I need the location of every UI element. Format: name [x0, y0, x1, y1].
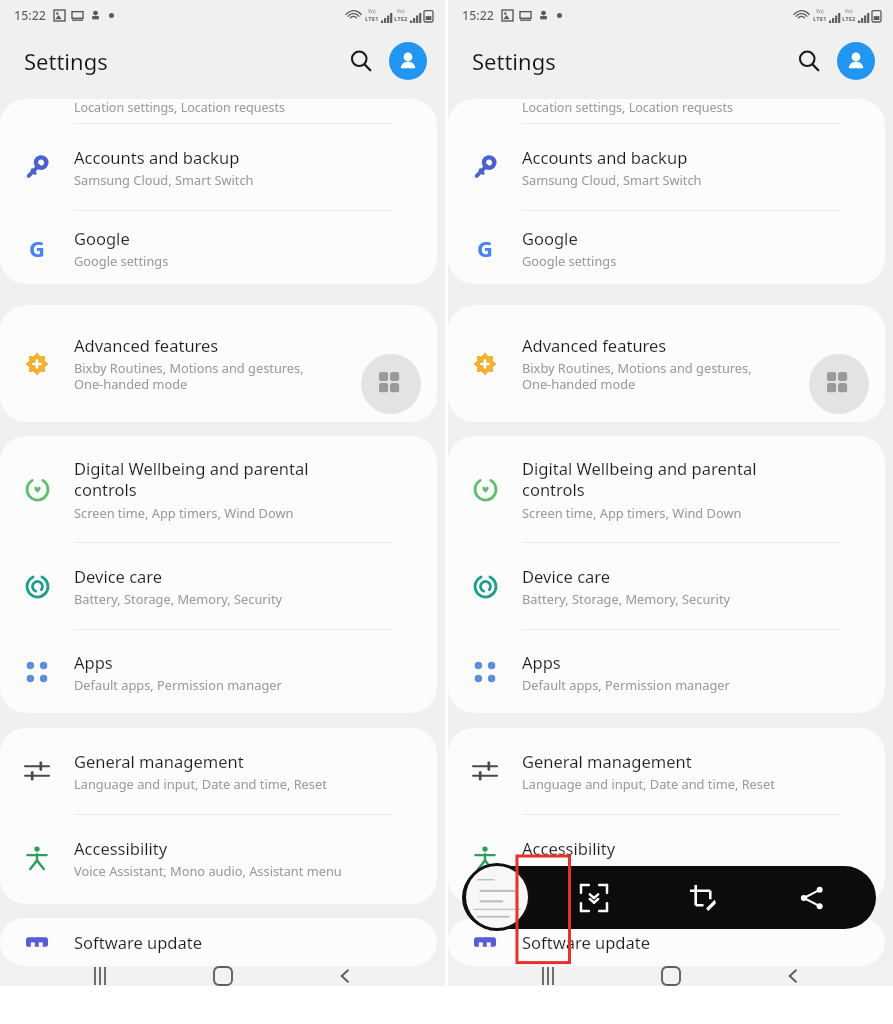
staticText: Language and input, Date and time, Reset: [74, 775, 327, 792]
button[interactable]: Accessibility: [448, 815, 859, 901]
staticText: LTE2: [842, 15, 856, 23]
button[interactable]: Account: [837, 42, 875, 80]
staticText: 15:22: [14, 7, 47, 24]
staticText: Apps: [74, 651, 113, 673]
button[interactable]: Accounts and backup: [448, 124, 859, 210]
button[interactable]: Scroll capture: [540, 866, 648, 929]
button[interactable]: Device care: [448, 543, 859, 629]
staticText: Apps: [522, 651, 561, 673]
staticText: Software update: [522, 931, 650, 953]
button[interactable]: Back: [770, 966, 816, 986]
button[interactable]: Home: [200, 966, 246, 986]
staticText: Software update: [74, 931, 202, 953]
button[interactable]: Device care: [0, 543, 411, 629]
staticText: Google settings: [74, 252, 169, 269]
staticText: LTE1: [813, 15, 827, 23]
staticText: Voice Assistant, Mono audio, Assistant m…: [74, 862, 342, 879]
button[interactable]: Search: [789, 41, 829, 81]
button[interactable]: Recents: [525, 966, 571, 986]
button[interactable]: Software update: [448, 918, 859, 966]
staticText: Vo): [816, 8, 824, 15]
staticText: General management: [74, 750, 244, 772]
staticText: Vo): [845, 8, 853, 15]
staticText: Google: [74, 227, 130, 249]
staticText: Accounts and backup: [74, 146, 240, 168]
button[interactable]: App grid: [361, 354, 421, 414]
staticText: Digital Wellbeing and parental controls: [522, 457, 757, 501]
button[interactable]: Share: [757, 866, 866, 929]
staticText: Device care: [522, 565, 611, 587]
staticText: Battery, Storage, Memory, Security: [522, 590, 731, 607]
staticText: Language and input, Date and time, Reset: [522, 775, 775, 792]
button[interactable]: Accounts and backup: [0, 124, 411, 210]
button[interactable]: G: [448, 211, 859, 284]
staticText: Accessibility: [74, 837, 168, 859]
button[interactable]: Back: [322, 966, 368, 986]
button[interactable]: Screenshot preview: [466, 866, 528, 928]
button[interactable]: G: [0, 211, 411, 284]
staticText: Digital Wellbeing and parental controls: [74, 457, 309, 501]
staticText: Bixby Routines, Motions and gestures, On…: [522, 359, 752, 393]
staticText: Vo): [397, 8, 405, 15]
staticText: Battery, Storage, Memory, Security: [74, 590, 283, 607]
button[interactable]: Software update: [0, 918, 411, 966]
button[interactable]: Apps: [0, 630, 411, 713]
staticText: Vo): [368, 8, 376, 15]
button[interactable]: General management: [0, 728, 411, 814]
button[interactable]: Advanced features: [0, 305, 411, 422]
button[interactable]: Advanced features: [448, 305, 859, 422]
staticText: Device care: [74, 565, 163, 587]
staticText: G: [29, 233, 45, 263]
staticText: Screen time, App timers, Wind Down: [74, 504, 294, 521]
staticText: Google settings: [522, 252, 617, 269]
button[interactable]: Digital Wellbeing and parental controls: [448, 436, 859, 542]
button[interactable]: Home: [648, 966, 694, 986]
staticText: Advanced features: [522, 334, 667, 356]
staticText: Voice Assistant, Mono audio, Assistant m…: [522, 862, 790, 879]
staticText: Settings: [472, 46, 556, 76]
staticText: General management: [522, 750, 692, 772]
staticText: Accounts and backup: [522, 146, 688, 168]
button[interactable]: App grid: [809, 354, 869, 414]
button[interactable]: Apps: [448, 630, 859, 713]
staticText: Bixby Routines, Motions and gestures, On…: [74, 359, 304, 393]
staticText: Advanced features: [74, 334, 219, 356]
button[interactable]: Recents: [77, 966, 123, 986]
staticText: Samsung Cloud, Smart Switch: [522, 171, 702, 188]
staticText: Default apps, Permission manager: [74, 676, 282, 693]
button[interactable]: Account: [389, 42, 427, 80]
staticText: 15:22: [462, 7, 495, 24]
button[interactable]: Search: [341, 41, 381, 81]
staticText: Default apps, Permission manager: [522, 676, 730, 693]
staticText: Location settings, Location requests: [74, 99, 286, 116]
staticText: Location settings, Location requests: [522, 99, 734, 116]
staticText: Screen time, App timers, Wind Down: [522, 504, 742, 521]
staticText: Samsung Cloud, Smart Switch: [74, 171, 254, 188]
button[interactable]: General management: [448, 728, 859, 814]
staticText: Accessibility: [522, 837, 616, 859]
button[interactable]: Crop: [648, 866, 757, 929]
button[interactable]: Accessibility: [0, 815, 411, 901]
staticText: Google: [522, 227, 578, 249]
staticText: LTE1: [365, 15, 379, 23]
staticText: G: [477, 233, 493, 263]
staticText: LTE2: [394, 15, 408, 23]
staticText: Settings: [24, 46, 108, 76]
button[interactable]: Digital Wellbeing and parental controls: [0, 436, 411, 542]
